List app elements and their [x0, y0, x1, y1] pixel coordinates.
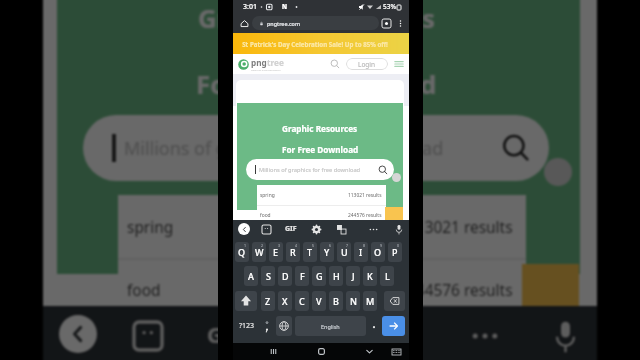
button[interactable]: C [295, 291, 309, 311]
button[interactable]: V [312, 291, 326, 311]
button[interactable]: 4 [286, 242, 300, 262]
staticText: K [367, 270, 373, 282]
button[interactable]: A [244, 266, 258, 286]
staticText: C [299, 295, 305, 307]
button[interactable]: Voice input [553, 319, 578, 354]
button[interactable]: 2 [252, 242, 266, 262]
button[interactable]: More [369, 227, 378, 232]
staticText: 8 [363, 243, 366, 248]
staticText: I [359, 246, 363, 258]
button[interactable]: N [346, 291, 360, 311]
button[interactable]: Scroll to top [544, 158, 572, 186]
button[interactable]: Settings [292, 322, 320, 350]
button[interactable]: 5 [303, 242, 317, 262]
staticText: U [341, 246, 348, 258]
staticText: W [255, 246, 264, 258]
staticText: food [260, 212, 271, 219]
button[interactable]: GIF [207, 319, 244, 349]
button[interactable]: Language [276, 316, 292, 336]
button[interactable]: Login [346, 58, 388, 70]
staticText: Login [358, 60, 376, 69]
button[interactable]: Backspace [384, 291, 405, 311]
button[interactable]: Recents [265, 343, 281, 360]
button[interactable]: Translate [371, 322, 399, 350]
button[interactable]: Stickers [134, 322, 162, 350]
staticText: For Free Download [196, 66, 437, 101]
staticText: Q [238, 246, 246, 258]
staticText: Z [265, 295, 271, 307]
button[interactable]: spring [257, 185, 386, 205]
staticText: food [127, 279, 161, 300]
staticText: St Patrick's Day Celebration Sale! Up to… [242, 40, 388, 48]
button[interactable]: food [257, 205, 386, 225]
button[interactable]: Menu [393, 58, 405, 70]
button[interactable]: Search [500, 132, 532, 164]
staticText: 5 [312, 243, 315, 248]
staticText: tree [267, 57, 284, 68]
staticText: English [321, 323, 340, 330]
button[interactable]: 8 [354, 242, 368, 262]
button[interactable]: St Patrick's Day Celebration Sale! Up to… [233, 33, 409, 54]
button[interactable]: D [278, 266, 292, 286]
button[interactable]: Millions of graphics for free download [246, 159, 394, 180]
button[interactable]: English [295, 316, 366, 336]
button[interactable]: Stickers [262, 225, 271, 234]
button[interactable]: More [471, 328, 499, 344]
staticText: M [366, 295, 375, 307]
button[interactable]: Keyboard [389, 343, 403, 360]
button[interactable]: spring [118, 195, 526, 258]
staticText: 244576 results [348, 212, 382, 219]
button[interactable]: Z [261, 291, 275, 311]
button[interactable]: Search [378, 165, 388, 175]
button[interactable]: Translate [337, 225, 346, 234]
button[interactable]: GIF [285, 224, 297, 234]
button[interactable]: Tabs [379, 16, 394, 31]
staticText: ?123 [239, 321, 255, 331]
button[interactable]: B [329, 291, 343, 311]
button[interactable]: 1 [235, 242, 249, 262]
button[interactable]: More options [394, 17, 406, 29]
button[interactable]: Back [238, 223, 250, 235]
button[interactable]: 6 [320, 242, 334, 262]
button[interactable]: H [329, 266, 343, 286]
button[interactable]: K [363, 266, 377, 286]
staticText: N [282, 3, 288, 11]
button[interactable]: Scroll to top [392, 173, 401, 182]
button[interactable]: S [261, 266, 275, 286]
button[interactable]: Settings [312, 225, 321, 234]
button[interactable]: Search [328, 57, 342, 71]
button[interactable]: J [346, 266, 360, 286]
button[interactable]: 3 [269, 242, 283, 262]
button[interactable]: Comma [260, 316, 274, 336]
staticText: A [248, 270, 254, 282]
button[interactable]: F [295, 266, 309, 286]
staticText: H [333, 270, 340, 282]
button[interactable]: food [118, 258, 526, 321]
button[interactable]: L [380, 266, 394, 286]
staticText: Y [324, 246, 330, 258]
staticText: O [374, 246, 382, 258]
button[interactable]: 9 [371, 242, 385, 262]
button[interactable]: Enter [382, 316, 405, 336]
staticText: 9 [380, 243, 383, 248]
staticText: V [316, 295, 322, 307]
button[interactable]: 0 [388, 242, 402, 262]
staticText: N [350, 295, 357, 307]
button[interactable]: Hide keyboard [361, 343, 377, 360]
button[interactable]: Shift [235, 291, 257, 311]
button[interactable]: Home [313, 343, 329, 360]
button[interactable]: Back [59, 315, 97, 353]
button[interactable]: Millions of graphics for free download [83, 115, 549, 181]
staticText: Graphic Resources [198, 0, 436, 35]
staticText: FREE PNG & VECTOR DESIGN [251, 69, 281, 72]
button[interactable]: pngtree.com [252, 16, 379, 30]
button[interactable]: Voice input [395, 224, 403, 235]
button[interactable]: 7 [337, 242, 351, 262]
button[interactable]: Home [237, 16, 252, 31]
button[interactable]: ?123 [235, 316, 258, 336]
button[interactable]: M [363, 291, 377, 311]
button[interactable]: X [278, 291, 292, 311]
staticText: 3 [278, 243, 281, 248]
button[interactable]: Period [368, 316, 380, 336]
button[interactable]: G [312, 266, 326, 286]
